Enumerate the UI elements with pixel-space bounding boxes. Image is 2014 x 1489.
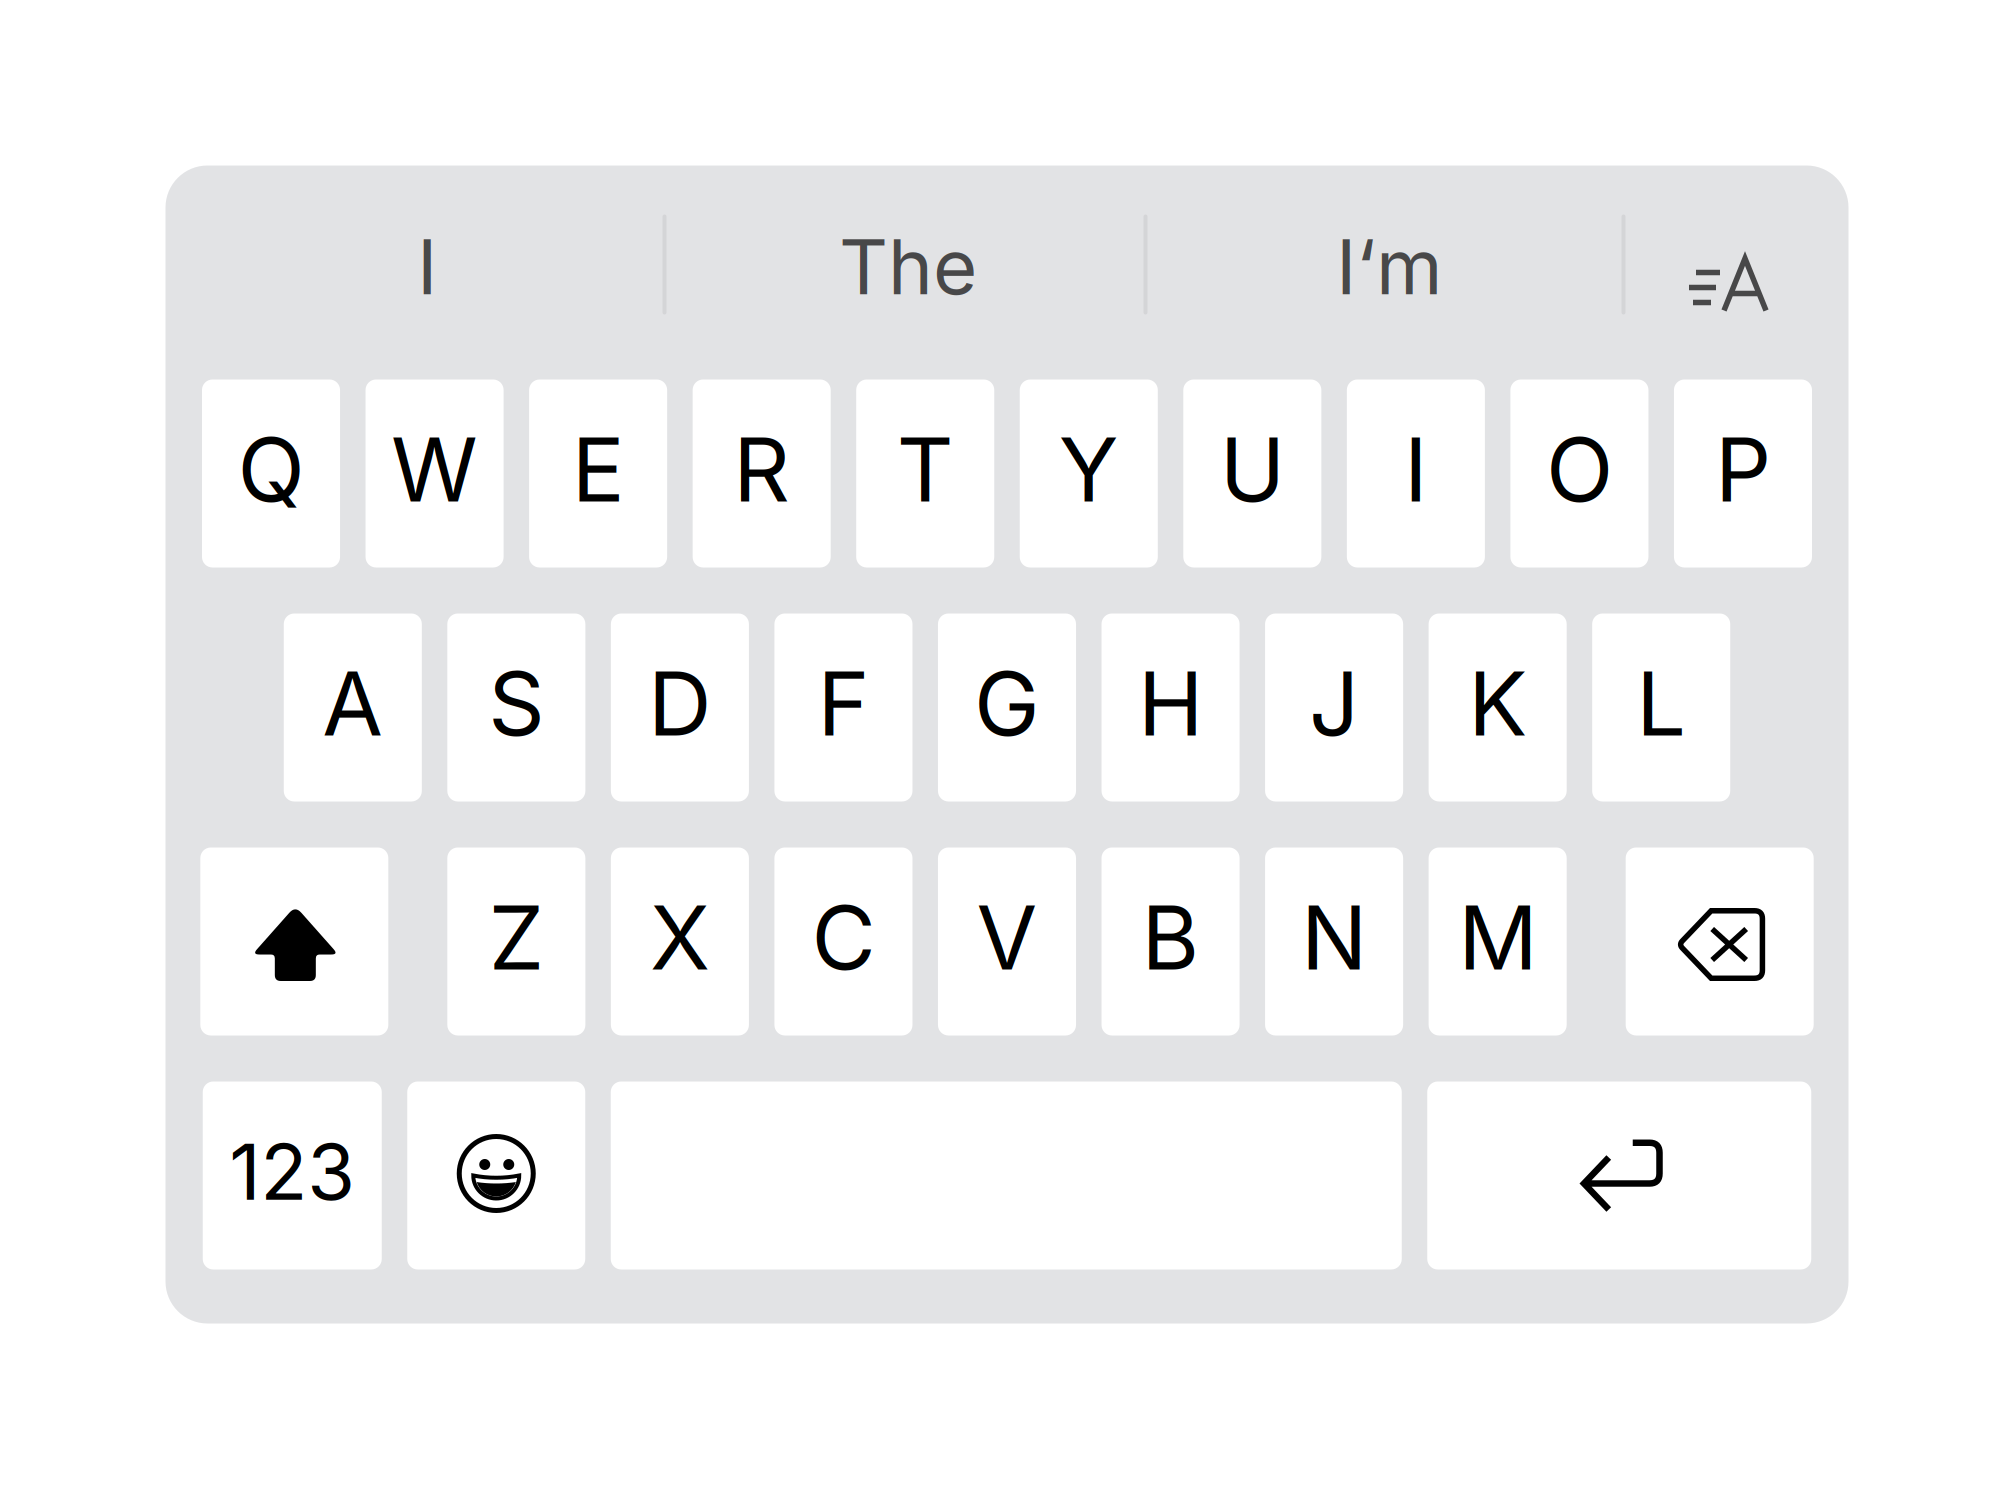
staticText: G [974,650,1040,757]
staticText: A [322,650,383,757]
button[interactable]: S [447,613,585,801]
staticText: E [572,416,625,523]
staticText: N [1301,884,1367,991]
staticText: M [1458,884,1537,991]
button[interactable]: G [938,613,1076,801]
staticText: W [391,416,478,523]
button[interactable]: Shift [200,847,388,1035]
button[interactable]: O [1510,379,1648,567]
button[interactable]: F [774,613,912,801]
staticText: I [417,220,437,312]
button[interactable]: L [1592,613,1730,801]
staticText: Z [489,884,544,991]
button[interactable]: K [1429,613,1567,801]
button[interactable]: W [366,379,504,567]
button[interactable]: I [1347,379,1485,567]
button[interactable]: Text formatting [1625,165,1848,379]
button[interactable]: D [611,613,749,801]
staticText: J [1309,650,1359,757]
staticText: The [839,220,977,312]
button[interactable]: 123 [203,1081,382,1269]
staticText: T [897,416,954,523]
button[interactable]: I‘m [1147,165,1621,379]
button[interactable]: B [1101,847,1240,1035]
staticText: L [1636,650,1686,757]
button[interactable]: Y [1020,379,1158,567]
button[interactable]: E [529,379,667,567]
button[interactable]: T [856,379,994,567]
staticText: F [817,650,869,757]
staticText: Q [237,416,304,523]
button[interactable]: M [1429,847,1567,1035]
button[interactable]: X [611,847,749,1035]
button[interactable]: V [938,847,1076,1035]
staticText: S [488,650,544,757]
button[interactable]: Return [1427,1081,1811,1269]
staticText: Y [1059,416,1119,523]
staticText: O [1546,416,1613,523]
button[interactable]: The [666,165,1143,379]
button[interactable]: I [165,165,662,379]
button[interactable]: N [1265,847,1403,1035]
button[interactable]: Emoji [407,1081,585,1269]
button[interactable]: P [1674,379,1812,567]
staticText: R [733,416,790,523]
button[interactable]: C [774,847,912,1035]
staticText: I‘m [1336,220,1443,312]
button[interactable]: Delete [1626,847,1814,1035]
staticText: P [1715,416,1771,523]
button[interactable]: Z [447,847,585,1035]
staticText: D [648,650,712,757]
staticText: X [650,884,710,991]
button[interactable]: H [1101,613,1240,801]
button[interactable]: R [693,379,831,567]
staticText: H [1138,650,1203,757]
staticText: K [1468,650,1527,757]
staticText: B [1142,884,1200,991]
button[interactable]: J [1265,613,1403,801]
staticText: C [811,884,875,991]
staticText: V [976,884,1037,991]
staticText: 123 [229,1125,355,1218]
button[interactable]: Q [202,379,340,567]
staticText: I [1404,416,1428,523]
button[interactable]: U [1183,379,1321,567]
button[interactable]: A [284,613,422,801]
staticText: U [1220,416,1285,523]
